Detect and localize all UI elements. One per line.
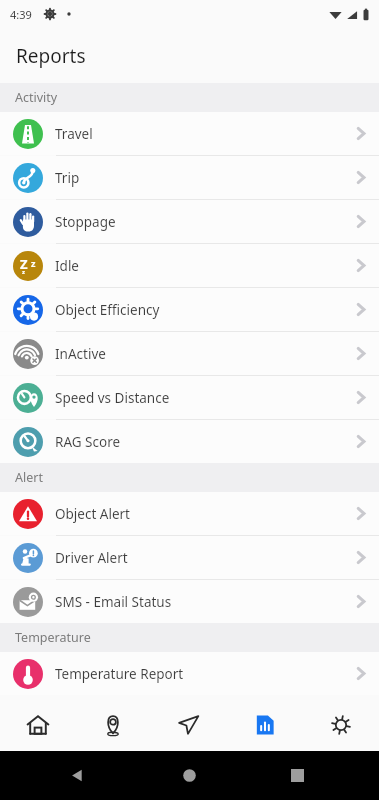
staticText: Travel (55, 125, 356, 143)
staticText: Object Alert (55, 505, 356, 523)
staticText: RAG Score (55, 433, 356, 451)
staticText: Driver Alert (55, 549, 356, 567)
button[interactable]: Settings (303, 699, 379, 751)
staticText: z (31, 257, 36, 269)
button[interactable]: Places (75, 699, 151, 751)
staticText: Activity (15, 89, 58, 106)
button[interactable]: Object Efficiency (0, 288, 379, 331)
staticText: Object Efficiency (55, 301, 356, 319)
button[interactable]: Travel (0, 112, 379, 155)
staticText: Alert (15, 469, 43, 486)
staticText: Temperature Report (55, 665, 356, 683)
button[interactable]: Z (0, 244, 379, 287)
button[interactable]: Reports (227, 699, 303, 751)
button[interactable]: Driver Alert (0, 536, 379, 579)
button[interactable]: Stoppage (0, 200, 379, 243)
staticText: Trip (55, 169, 356, 187)
staticText: z (22, 268, 25, 276)
button[interactable]: Navigate (151, 699, 227, 751)
button[interactable]: RAG Score (0, 420, 379, 463)
button[interactable]: Temperature Report (0, 652, 379, 695)
button[interactable]: Object Alert (0, 492, 379, 535)
staticText: Stoppage (55, 213, 356, 231)
staticText: Reports (16, 43, 86, 69)
staticText: Speed vs Distance (55, 389, 356, 407)
button[interactable]: SMS - Email Status (0, 580, 379, 623)
staticText: Z (20, 255, 28, 273)
button[interactable]: Speed vs Distance (0, 376, 379, 419)
staticText: SMS - Email Status (55, 593, 356, 611)
staticText: 4:39 (10, 7, 32, 22)
staticText: Idle (55, 257, 356, 275)
staticText: InActive (55, 345, 356, 363)
staticText: Temperature (15, 629, 91, 646)
button[interactable]: Home (0, 699, 75, 751)
button[interactable]: Trip (0, 156, 379, 199)
button[interactable]: InActive (0, 332, 379, 375)
